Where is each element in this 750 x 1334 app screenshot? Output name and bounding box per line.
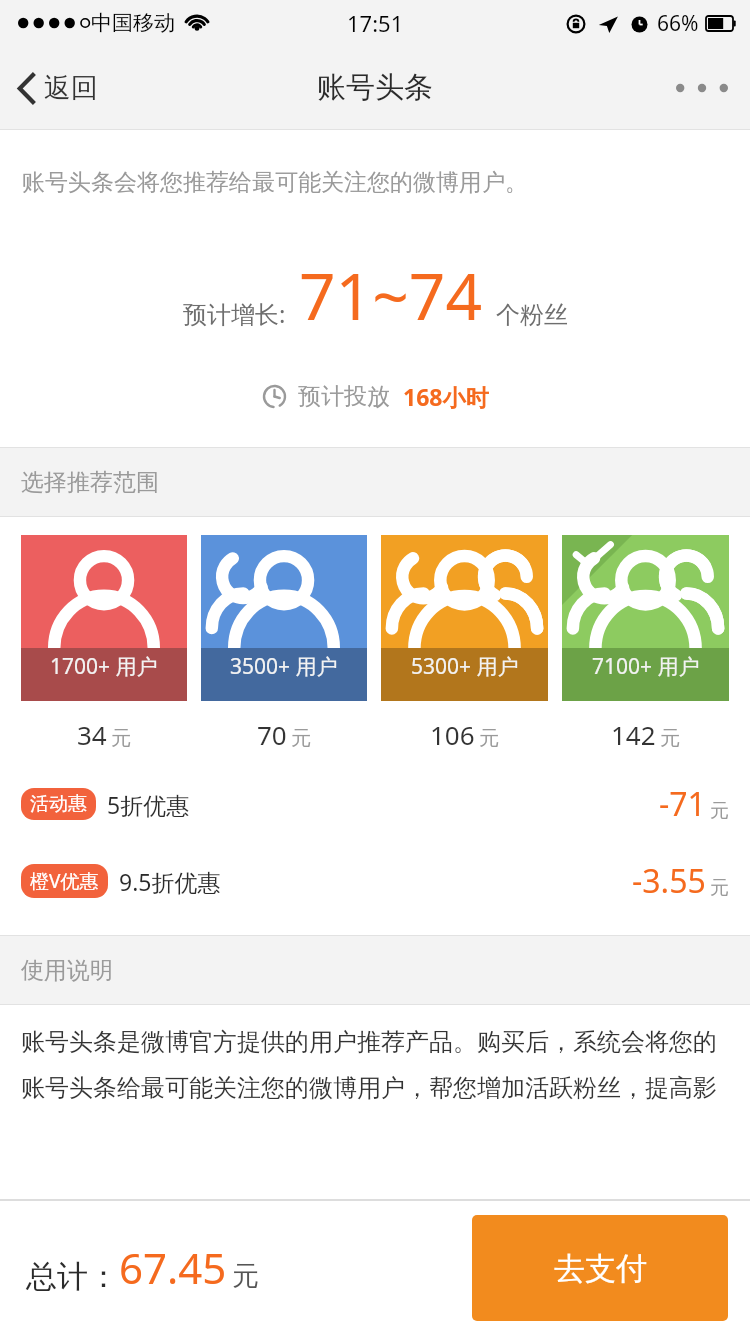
staticText: 5300+ 用户 <box>411 652 519 681</box>
staticText: 中国移动 <box>91 10 175 36</box>
staticText: 活动惠 <box>30 792 87 816</box>
staticText: 67.45 <box>119 1239 227 1296</box>
staticText: 去支付 <box>554 1249 647 1288</box>
staticText: -71 <box>659 782 706 826</box>
staticText: 预计投放 <box>298 382 390 411</box>
staticText: 70 <box>257 717 287 752</box>
staticText: 元 <box>660 726 680 751</box>
staticText: 142 <box>611 717 656 752</box>
staticText: 9.5折优惠 <box>119 866 221 897</box>
staticText: 预计增长: <box>183 297 286 330</box>
button[interactable]: 3500+ 用户 <box>201 535 367 701</box>
staticText: 元 <box>111 726 131 751</box>
staticText: 71~74 <box>299 252 483 339</box>
staticText: 账号头条会将您推荐给最可能关注您的微博用户。 <box>22 168 528 197</box>
staticText: 总计： <box>26 1257 119 1296</box>
staticText: 账号头条 <box>317 69 433 106</box>
button[interactable]: 去支付 <box>472 1215 728 1321</box>
staticText: 元 <box>291 726 311 751</box>
button[interactable]: 1700+ 用户 <box>21 535 187 701</box>
staticText: 元 <box>479 726 499 751</box>
staticText: 34 <box>77 717 107 752</box>
button[interactable]: More options <box>654 61 750 115</box>
staticText: 1700+ 用户 <box>50 652 158 681</box>
staticText: 选择推荐范围 <box>21 468 159 497</box>
button[interactable]: 7100+ 用户 <box>562 535 729 701</box>
staticText: 5折优惠 <box>107 789 190 820</box>
staticText: 17:51 <box>347 8 404 38</box>
staticText: 个粉丝 <box>496 300 568 330</box>
button[interactable]: 橙V优惠 <box>0 859 750 903</box>
staticText: 返回 <box>44 71 98 105</box>
button[interactable]: 返回 <box>0 57 116 119</box>
staticText: 账号头条是微博官方提供的用户推荐产品。购买后，系统会将您的账号头条给最可能关注您… <box>21 1027 729 1103</box>
staticText: 橙V优惠 <box>30 868 99 894</box>
staticText: 元 <box>710 799 729 823</box>
staticText: 106 <box>430 717 475 752</box>
staticText: -3.55 <box>632 859 706 903</box>
staticText: 元 <box>710 876 729 900</box>
button[interactable]: 活动惠 <box>0 782 750 826</box>
staticText: 7100+ 用户 <box>592 652 700 681</box>
staticText: 168小时 <box>403 381 489 412</box>
staticText: 66% <box>657 9 699 38</box>
button[interactable]: 5300+ 用户 <box>381 535 548 701</box>
staticText: 3500+ 用户 <box>230 652 338 681</box>
staticText: 使用说明 <box>21 956 113 985</box>
staticText: 元 <box>232 1259 259 1293</box>
